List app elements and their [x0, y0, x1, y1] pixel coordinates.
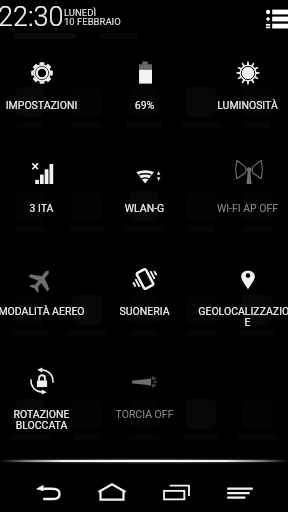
- button[interactable]: GEOLOCALIZZAZIONE: [196, 262, 288, 334]
- staticText: 3 ITA: [0, 202, 92, 214]
- button[interactable]: WI-FI AP OFF: [196, 159, 288, 231]
- staticText: 22:30: [0, 1, 64, 33]
- button[interactable]: 69%: [93, 56, 196, 128]
- button[interactable]: WLAN-G: [93, 159, 196, 231]
- button[interactable]: Home: [80, 472, 144, 512]
- staticText: GEOLOCALIZZAZIONE: [197, 305, 288, 329]
- button[interactable]: Recents: [144, 472, 208, 512]
- staticText: IMPOSTAZIONI: [0, 99, 92, 111]
- staticText: ROTAZIONE BLOCCATA: [0, 408, 92, 432]
- staticText: MODALITÀ AEREO: [0, 305, 92, 317]
- button[interactable]: IMPOSTAZIONI: [0, 56, 93, 128]
- button[interactable]: ROTAZIONE BLOCCATA: [0, 365, 93, 437]
- staticText: 69%: [94, 99, 195, 111]
- button[interactable]: Quick settings list: [264, 6, 288, 34]
- staticText: LUNEDÌ: [64, 7, 97, 18]
- button[interactable]: MODALITÀ AEREO: [0, 262, 93, 334]
- button[interactable]: Back: [16, 472, 80, 512]
- button[interactable]: 3 ITA: [0, 159, 93, 231]
- staticText: SUONERIA: [94, 305, 195, 317]
- button[interactable]: Menu: [208, 472, 272, 512]
- staticText: TORCIA OFF: [94, 408, 195, 420]
- staticText: 10 FEBBRAIO: [64, 16, 121, 27]
- staticText: WI-FI AP OFF: [197, 202, 288, 214]
- staticText: LUMINOSITÀ: [197, 99, 288, 111]
- button[interactable]: SUONERIA: [93, 262, 196, 334]
- button[interactable]: TORCIA OFF: [93, 365, 196, 437]
- staticText: WLAN-G: [94, 202, 195, 214]
- button[interactable]: LUMINOSITÀ: [196, 56, 288, 128]
